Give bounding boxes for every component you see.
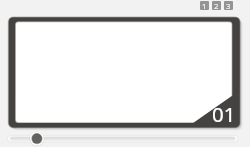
button[interactable]: Step 1 [200, 1, 209, 10]
button[interactable]: Progress slider [2, 132, 238, 145]
staticText: 3 [226, 1, 231, 10]
button[interactable]: Step 3 [224, 1, 233, 10]
button[interactable]: Step 2 [212, 1, 221, 10]
staticText: 1 [202, 1, 207, 10]
staticText: 01 [212, 100, 236, 128]
staticText: 2 [214, 1, 219, 10]
